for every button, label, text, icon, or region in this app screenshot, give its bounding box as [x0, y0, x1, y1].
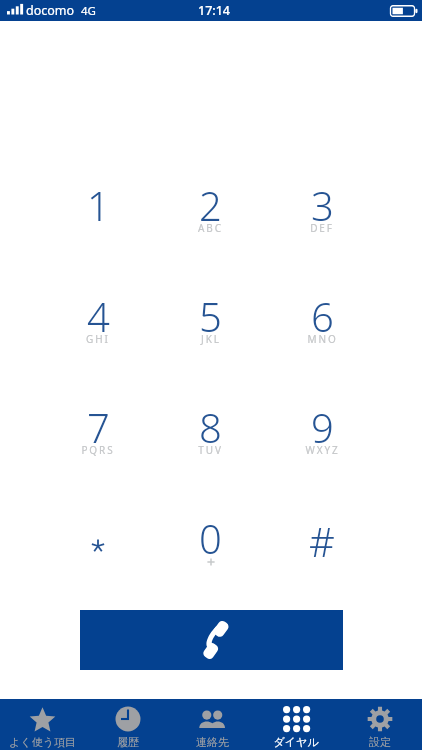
button[interactable]: 0	[154, 491, 266, 577]
button[interactable]: ダイヤル	[254, 699, 338, 750]
staticText: 7	[87, 400, 110, 454]
staticText: 3	[311, 178, 334, 232]
staticText: WXYZ	[305, 443, 340, 457]
staticText: 4	[87, 289, 110, 343]
button[interactable]: 4	[42, 269, 154, 355]
staticText: よく使う項目	[9, 735, 76, 749]
button[interactable]: 1	[42, 158, 154, 244]
staticText: JKL	[201, 332, 221, 346]
staticText: TUV	[198, 443, 223, 457]
staticText: 連絡先	[196, 735, 229, 749]
button[interactable]: 履歴	[85, 699, 170, 750]
button[interactable]: 9	[266, 380, 378, 466]
button[interactable]: 5	[154, 269, 266, 355]
button[interactable]: 6	[266, 269, 378, 355]
staticText: #	[309, 514, 335, 568]
staticText: 2	[199, 178, 222, 232]
staticText: 4G	[81, 3, 96, 19]
staticText: ダイヤル	[273, 735, 319, 749]
button[interactable]: 7	[42, 380, 154, 466]
button[interactable]: Call	[80, 610, 343, 670]
button[interactable]: 2	[154, 158, 266, 244]
staticText: 6	[311, 289, 334, 343]
staticText: 0	[199, 511, 222, 565]
staticText: PQRS	[81, 443, 115, 457]
button[interactable]	[42, 491, 154, 577]
staticText: DEF	[310, 221, 334, 235]
staticText: docomo	[26, 2, 75, 19]
button[interactable]: 8	[154, 380, 266, 466]
staticText: 1	[87, 178, 110, 232]
staticText: 17:14	[198, 2, 231, 19]
button[interactable]: よく使う項目	[0, 699, 85, 750]
button[interactable]: 設定	[338, 699, 422, 750]
staticText: ABC	[198, 221, 223, 235]
staticText: 履歴	[117, 735, 139, 749]
button[interactable]: 3	[266, 158, 378, 244]
staticText: 5	[199, 289, 222, 343]
staticText: 9	[311, 400, 334, 454]
button[interactable]: #	[266, 494, 378, 580]
button[interactable]: 連絡先	[170, 699, 254, 750]
staticText: 設定	[369, 735, 391, 749]
staticText: MNO	[307, 332, 338, 346]
staticText: GHI	[86, 332, 110, 346]
staticText: 8	[199, 400, 222, 454]
